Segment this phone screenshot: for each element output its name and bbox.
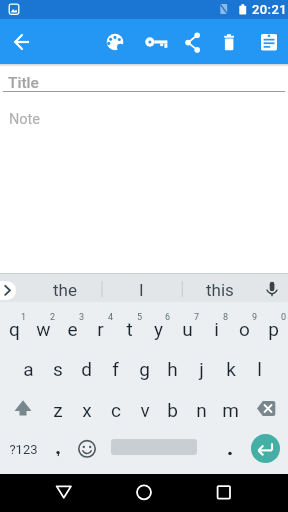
button[interactable] <box>0 281 16 300</box>
staticText: o <box>239 318 250 340</box>
staticText: 7 <box>194 312 200 322</box>
button[interactable]: Title <box>3 68 285 95</box>
staticText: v <box>140 399 150 421</box>
staticText: j <box>199 358 204 380</box>
button[interactable]: g <box>130 349 159 389</box>
staticText: 3 <box>79 312 85 322</box>
button[interactable]: the <box>35 276 95 304</box>
staticText: 9 <box>252 312 258 322</box>
button[interactable]: p <box>259 309 288 349</box>
button[interactable]: l <box>245 349 274 389</box>
button[interactable]: z <box>43 390 72 430</box>
staticText: 8 <box>223 312 229 322</box>
staticText: 1 <box>21 312 27 322</box>
staticText: 0 <box>281 312 287 322</box>
button[interactable]: k <box>216 349 245 389</box>
staticText: ?123 <box>9 442 38 457</box>
button[interactable]: c <box>101 390 130 430</box>
staticText: u <box>182 318 193 340</box>
button[interactable] <box>96 23 134 61</box>
staticText: p <box>268 318 279 340</box>
button[interactable]: y <box>144 309 173 349</box>
button[interactable]: i <box>202 309 231 349</box>
staticText: k <box>226 358 236 380</box>
button[interactable]: ?123 <box>3 430 43 468</box>
staticText: 6 <box>165 312 171 322</box>
button[interactable] <box>220 435 240 463</box>
staticText: y <box>154 318 163 340</box>
button[interactable]: q <box>0 309 29 349</box>
button[interactable]: h <box>158 349 187 389</box>
staticText: w <box>36 318 51 340</box>
staticText: 20:21 <box>252 2 288 17</box>
staticText: q <box>9 318 20 340</box>
button[interactable] <box>258 274 286 302</box>
button[interactable]: d <box>72 349 101 389</box>
staticText: Title <box>8 74 39 92</box>
button[interactable]: a <box>14 349 43 389</box>
button[interactable] <box>73 435 101 463</box>
button[interactable] <box>6 26 38 58</box>
button[interactable]: x <box>72 390 101 430</box>
staticText: t <box>126 318 133 340</box>
button[interactable]: m <box>216 390 245 430</box>
staticText: i <box>214 318 219 340</box>
button[interactable] <box>4 390 42 428</box>
staticText: 5 <box>137 312 143 322</box>
button[interactable] <box>211 23 249 61</box>
button[interactable] <box>247 390 285 428</box>
staticText: g <box>139 358 150 380</box>
staticText: I <box>139 280 144 300</box>
staticText: l <box>257 358 262 380</box>
staticText: the <box>53 280 77 300</box>
button[interactable]: u <box>173 309 202 349</box>
button[interactable] <box>173 23 211 61</box>
staticText: a <box>23 358 34 380</box>
staticText: Note <box>9 111 41 128</box>
staticText: this <box>206 280 234 300</box>
button[interactable]: n <box>187 390 216 430</box>
button[interactable]: v <box>130 390 159 430</box>
button[interactable] <box>211 475 237 511</box>
staticText: m <box>222 399 239 421</box>
button[interactable]: this <box>190 276 250 304</box>
staticText: 4 <box>108 312 114 322</box>
button[interactable] <box>135 23 173 61</box>
staticText: x <box>82 399 92 421</box>
button[interactable] <box>48 435 68 463</box>
button[interactable]: r <box>86 309 115 349</box>
button[interactable]: e <box>58 309 87 349</box>
button[interactable]: b <box>158 390 187 430</box>
button[interactable] <box>131 475 157 511</box>
staticText: 2 <box>50 312 56 322</box>
staticText: z <box>53 399 63 421</box>
button[interactable]: f <box>101 349 130 389</box>
button[interactable]: t <box>115 309 144 349</box>
staticText: r <box>97 318 104 340</box>
button[interactable]: j <box>187 349 216 389</box>
button[interactable]: s <box>43 349 72 389</box>
staticText: n <box>196 399 207 421</box>
button[interactable]: I <box>111 276 171 304</box>
staticText: e <box>67 318 78 340</box>
staticText: b <box>167 399 178 421</box>
button[interactable]: o <box>230 309 259 349</box>
button[interactable] <box>250 23 288 61</box>
button[interactable] <box>251 434 280 463</box>
staticText: f <box>112 358 119 380</box>
staticText: h <box>167 358 178 380</box>
staticText: c <box>111 399 121 421</box>
staticText: d <box>81 358 92 380</box>
button[interactable]: Note <box>3 106 285 133</box>
button[interactable]: w <box>29 309 58 349</box>
button[interactable] <box>51 475 77 511</box>
staticText: s <box>53 358 63 380</box>
